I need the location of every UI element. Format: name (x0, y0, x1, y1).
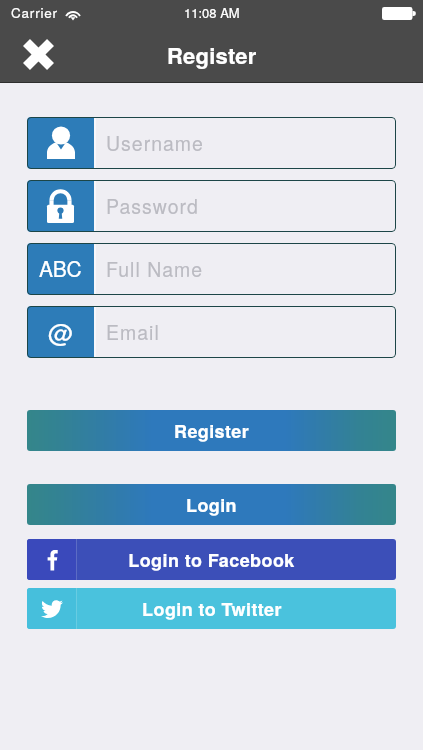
staticText: @ (48, 313, 74, 349)
staticText: Email (106, 318, 160, 346)
staticText: Login (186, 492, 237, 518)
staticText: Register (174, 418, 250, 444)
button[interactable]: Close (0, 26, 76, 83)
button[interactable]: Username (27, 117, 396, 169)
staticText: Login to Twitter (142, 596, 282, 622)
staticText: Password (106, 192, 199, 220)
staticText: Carrier (11, 3, 58, 22)
button[interactable]: Login to Facebook (27, 539, 396, 580)
staticText: Login to Facebook (128, 547, 295, 573)
staticText: Register (167, 39, 257, 71)
button[interactable]: ABC (27, 243, 396, 295)
button[interactable]: Register (27, 410, 396, 451)
staticText: Username (106, 129, 204, 157)
button[interactable]: Password (27, 180, 396, 232)
button[interactable]: @ (27, 306, 396, 358)
button[interactable]: Login to Twitter (27, 588, 396, 629)
button[interactable]: Login (27, 484, 396, 525)
staticText: Full Name (106, 255, 204, 283)
staticText: ABC (39, 253, 82, 283)
staticText: 11:08 AM (184, 3, 240, 22)
